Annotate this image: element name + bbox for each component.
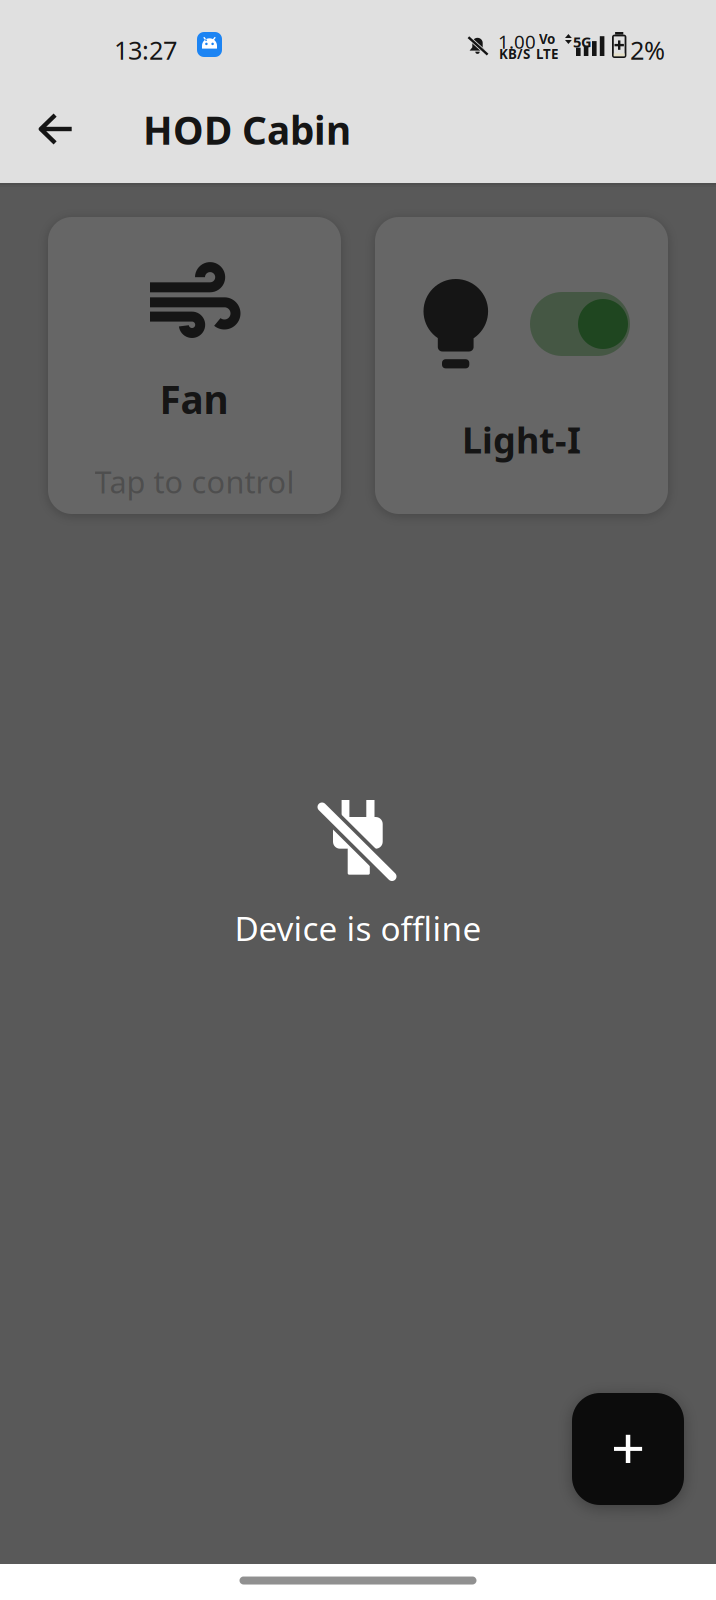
staticText: KB/S [499, 45, 530, 63]
staticText: 5G [573, 32, 592, 51]
staticText: LTE [536, 45, 558, 63]
button[interactable]: Fan [48, 217, 341, 514]
staticText: Vo [539, 30, 555, 48]
button[interactable]: Add device [572, 1393, 684, 1505]
staticText: 2% [630, 33, 665, 67]
button[interactable]: Light-I [375, 217, 668, 514]
button[interactable]: Back [0, 86, 716, 183]
staticText: Fan [159, 373, 228, 425]
staticText: Device is offline [234, 906, 481, 950]
staticText: 1.00 [498, 29, 536, 54]
staticText: HOD Cabin [143, 104, 351, 155]
staticText: Tap to control [94, 461, 294, 502]
staticText: Light-I [462, 416, 581, 463]
staticText: 13:27 [114, 33, 177, 67]
